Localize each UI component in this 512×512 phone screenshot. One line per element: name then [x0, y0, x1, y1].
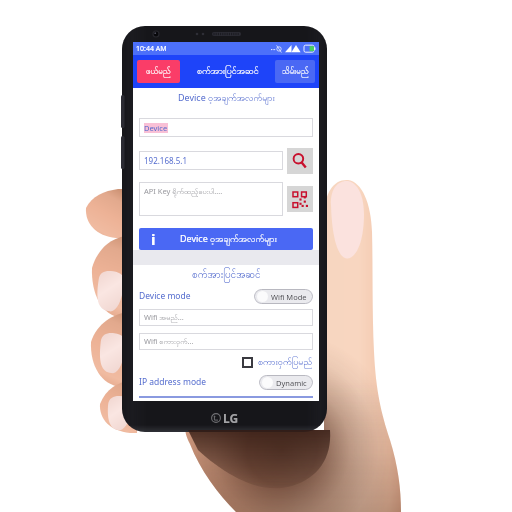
- staticText: Wifi အမည်...: [144, 312, 184, 324]
- staticText: ဖယ်မည်: [146, 66, 171, 78]
- button[interactable]: သိမ်းမည်: [275, 60, 315, 83]
- button[interactable]: Wifi အမည်...: [144, 309, 308, 326]
- staticText: Wifi Mode: [271, 292, 307, 302]
- staticText: 192.168.5.1: [144, 155, 188, 166]
- staticText: API Key ရိုက်ထည့်ပေးပါ....: [144, 186, 223, 198]
- staticText: Device ၀့အချက်အလက်များ: [180, 232, 277, 246]
- staticText: IP address mode: [139, 376, 207, 388]
- button[interactable]: i: [139, 228, 313, 250]
- button[interactable]: Device: [144, 118, 308, 137]
- staticText: စကားဝှက်ပြမည်: [258, 356, 313, 369]
- button[interactable]: Wifi Mode: [254, 289, 313, 304]
- button[interactable]: Show password: [242, 357, 253, 368]
- staticText: LG: [223, 410, 239, 426]
- staticText: 10:44 AM: [136, 44, 167, 54]
- staticText: Device: [144, 123, 168, 133]
- staticText: i: [151, 229, 156, 249]
- staticText: Device mode: [139, 290, 191, 302]
- staticText: Wifi စကားဝှက်...: [144, 336, 194, 348]
- staticText: စက်အားပြင်အဆင်: [197, 65, 259, 78]
- button[interactable]: API Key ရိုက်ထည့်ပေးပါ....: [144, 186, 278, 212]
- button[interactable]: Search: [287, 148, 313, 174]
- button[interactable]: Wifi စကားဝှက်...: [144, 333, 308, 350]
- staticText: သိမ်းမည်: [282, 66, 309, 78]
- staticText: Device ၀့အချက်အလက်များ: [178, 91, 275, 105]
- button[interactable]: ဖယ်မည်: [137, 60, 180, 83]
- button[interactable]: Scan QR code: [287, 186, 313, 212]
- button[interactable]: 192.168.5.1: [144, 151, 278, 170]
- staticText: Dynamic: [276, 378, 307, 388]
- staticText: စက်အားပြင်အဆင်: [192, 268, 261, 283]
- button[interactable]: Dynamic: [259, 375, 313, 390]
